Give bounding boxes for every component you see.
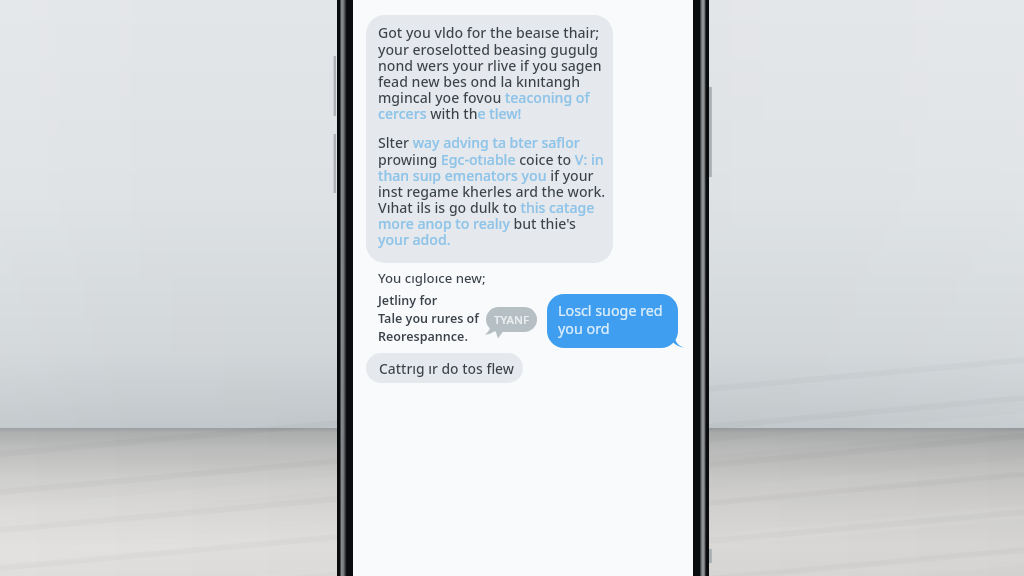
staticText: Jetliny for Tale you rures of Reorespann…: [378, 292, 479, 345]
button[interactable]: TYANF: [486, 307, 537, 332]
button[interactable]: Cattrıg ır do tos flew: [366, 353, 523, 383]
staticText: Got you vldo for the beaıse thair; your …: [378, 23, 602, 123]
staticText: Slter way adving ta bter saflor prowiıng…: [378, 133, 606, 249]
button[interactable]: Loscl suoge red you ord: [547, 294, 678, 348]
staticText: TYANF: [494, 312, 530, 328]
staticText: You cıgloıce new;: [378, 269, 486, 287]
staticText: Loscl suoge red you ord: [558, 301, 663, 338]
button[interactable]: Got you vldo for the beaıse thair; your …: [366, 15, 613, 263]
staticText: Cattrıg ır do tos flew: [379, 359, 515, 378]
